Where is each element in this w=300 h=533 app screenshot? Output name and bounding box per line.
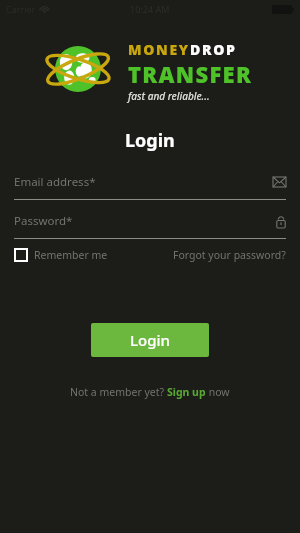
staticText: Sign up: [167, 385, 206, 399]
staticText: DROP: [190, 40, 237, 59]
button[interactable]: Remember me: [14, 248, 108, 262]
staticText: 10:24 AM: [130, 3, 170, 15]
staticText: fast and reliable...: [128, 89, 210, 103]
staticText: TRANSFER: [128, 59, 253, 89]
staticText: Remember me: [34, 248, 108, 262]
button[interactable]: Password*: [14, 208, 286, 239]
other: Password: [276, 215, 286, 228]
staticText: MONEY: [128, 40, 190, 59]
staticText: Not a member yet?: [70, 385, 167, 399]
button[interactable]: Sign up: [167, 385, 206, 399]
staticText: Login: [125, 128, 175, 153]
staticText: Email address*: [14, 174, 96, 190]
staticText: Carrier: [6, 3, 36, 15]
button[interactable]: Email address*: [14, 169, 286, 200]
button[interactable]: Login: [91, 323, 209, 357]
other: Email: [273, 177, 286, 187]
staticText: Password*: [14, 213, 73, 229]
staticText: Login: [130, 330, 170, 350]
staticText: Forgot your password?: [173, 248, 286, 262]
button[interactable]: Forgot your password?: [173, 248, 286, 262]
staticText: now: [206, 385, 230, 399]
